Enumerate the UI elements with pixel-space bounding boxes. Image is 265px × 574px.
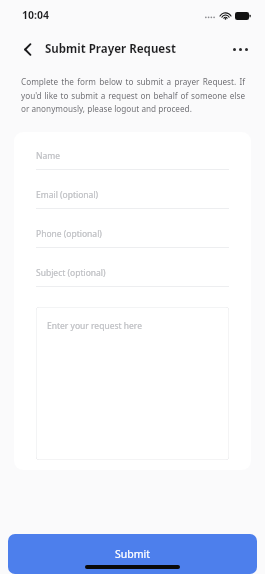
staticText: 10:04 bbox=[22, 8, 49, 22]
button[interactable]: Back bbox=[14, 36, 40, 62]
staticText: Complete the form below to submit a pray… bbox=[21, 76, 245, 114]
staticText: Name bbox=[36, 150, 60, 162]
staticText: Email (optional) bbox=[36, 189, 99, 201]
staticText: Submit bbox=[115, 547, 151, 561]
button[interactable]: Phone (optional) bbox=[36, 228, 229, 248]
button[interactable]: Submit bbox=[8, 534, 257, 574]
staticText: Subject (optional) bbox=[36, 267, 106, 279]
button[interactable]: Name bbox=[36, 150, 229, 170]
button[interactable]: More options bbox=[227, 36, 253, 62]
staticText: Submit Prayer Request bbox=[45, 41, 176, 57]
button[interactable]: Enter your request here bbox=[36, 307, 229, 460]
staticText: Enter your request here bbox=[47, 320, 142, 332]
button[interactable]: Email (optional) bbox=[36, 189, 229, 209]
button[interactable]: Subject (optional) bbox=[36, 267, 229, 287]
staticText: Phone (optional) bbox=[36, 228, 102, 240]
